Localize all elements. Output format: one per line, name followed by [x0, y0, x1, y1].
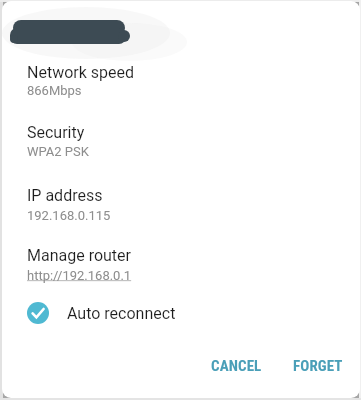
button[interactable]: CANCEL: [199, 348, 274, 384]
staticText: WPA2 PSK: [27, 144, 89, 159]
staticText: Security: [27, 123, 85, 142]
staticText: Auto reconnect: [67, 304, 176, 323]
staticText: IP address: [27, 186, 103, 205]
staticText: 866Mbps: [27, 83, 82, 98]
button[interactable]: FORGET: [281, 348, 355, 384]
button[interactable]: http://192.168.0.1: [25, 266, 134, 285]
staticText: Manage router: [27, 246, 131, 265]
button[interactable]: Auto reconnect: [20, 296, 183, 330]
staticText: Network speed: [27, 63, 135, 82]
staticText: CANCEL: [211, 357, 262, 375]
staticText: http://192.168.0.1: [27, 268, 132, 283]
staticText: 192.168.0.115: [27, 208, 111, 223]
staticText: FORGET: [293, 357, 343, 375]
